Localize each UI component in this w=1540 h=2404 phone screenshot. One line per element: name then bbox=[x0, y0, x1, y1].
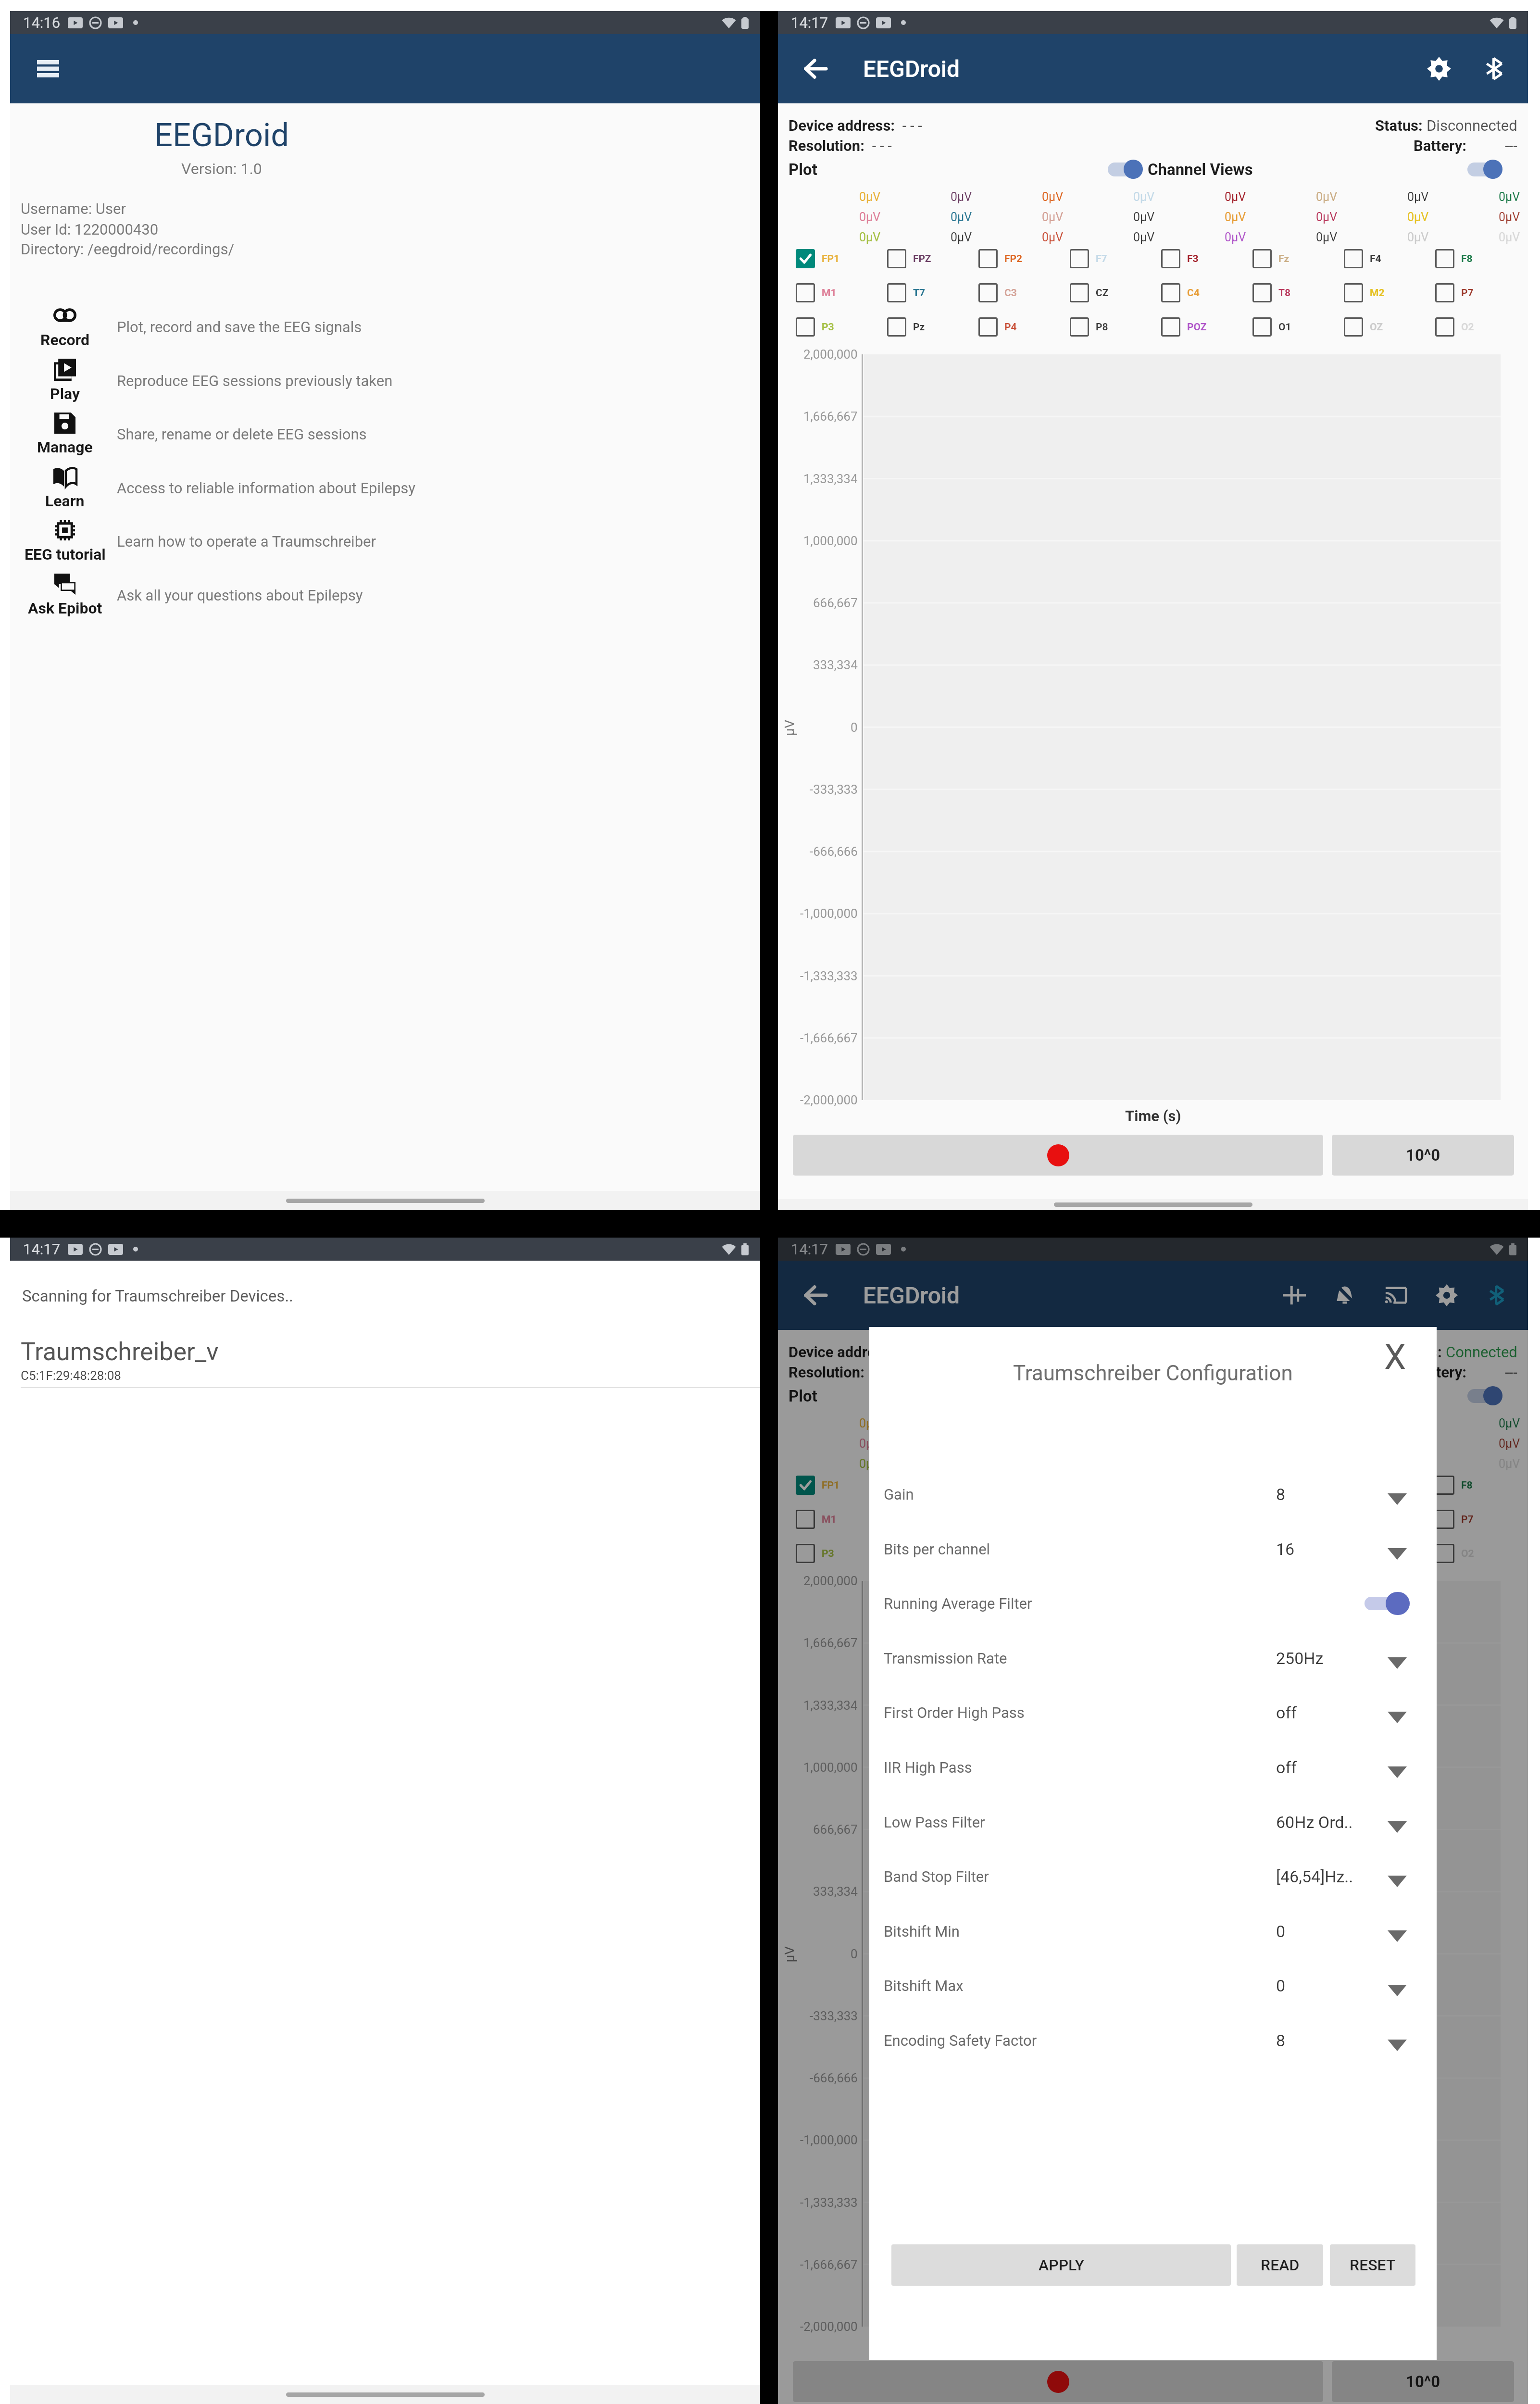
button[interactable] bbox=[1365, 1592, 1410, 1615]
button[interactable]: Bitshift Max bbox=[869, 1958, 1437, 2013]
button[interactable]: T8 bbox=[1252, 276, 1334, 310]
button[interactable] bbox=[793, 1135, 1323, 1176]
button[interactable]: POZ bbox=[1161, 310, 1243, 344]
button[interactable]: RESET bbox=[1330, 2244, 1415, 2286]
button[interactable]: O2 bbox=[1435, 310, 1517, 344]
staticText: off bbox=[1276, 1703, 1297, 1722]
button[interactable] bbox=[793, 2361, 1323, 2402]
button[interactable]: M2 bbox=[1344, 276, 1426, 310]
button[interactable] bbox=[1467, 159, 1502, 180]
button[interactable] bbox=[1467, 1385, 1502, 1406]
button[interactable]: P3 bbox=[796, 310, 877, 344]
button[interactable]: FP1 bbox=[796, 1468, 877, 1502]
button[interactable]: Bluetooth connected bbox=[1477, 1275, 1518, 1316]
button[interactable]: O1 bbox=[1252, 310, 1334, 344]
staticText: 333,334 bbox=[813, 658, 858, 672]
button[interactable]: P4 bbox=[978, 310, 1060, 344]
button[interactable]: Record bbox=[10, 297, 760, 351]
button[interactable]: P7 bbox=[1435, 1502, 1517, 1536]
button[interactable]: Bluetooth bbox=[1474, 48, 1515, 89]
button[interactable]: Running Average Filter bbox=[869, 1576, 1437, 1630]
button[interactable]: P3 bbox=[796, 1537, 877, 1570]
button[interactable]: Play bbox=[10, 351, 760, 404]
staticText: Reproduce EEG sessions previously taken bbox=[117, 372, 393, 389]
button[interactable]: F8 bbox=[1435, 242, 1517, 275]
button[interactable]: Ask Epibot bbox=[10, 565, 760, 619]
button[interactable]: Back bbox=[797, 50, 835, 88]
button[interactable]: Close bbox=[1373, 1335, 1417, 1379]
button[interactable]: OZ bbox=[1344, 1537, 1426, 1570]
button[interactable]: M1 bbox=[796, 276, 877, 310]
staticText: --- bbox=[1505, 1364, 1517, 1381]
button[interactable]: 10^0 bbox=[1332, 1135, 1514, 1176]
button[interactable]: Manage bbox=[10, 404, 760, 458]
staticText: M2 bbox=[1370, 287, 1385, 299]
button[interactable]: P7 bbox=[1435, 276, 1517, 310]
staticText: 0µV bbox=[1225, 230, 1246, 244]
button[interactable]: FPZ bbox=[887, 242, 969, 275]
button[interactable]: Bits per channel bbox=[869, 1522, 1437, 1576]
button[interactable]: CZ bbox=[1070, 276, 1152, 310]
button[interactable]: O2 bbox=[1435, 1537, 1517, 1570]
button[interactable]: APPLY bbox=[891, 2244, 1231, 2286]
button[interactable]: Add channel bbox=[1274, 1275, 1315, 1316]
button[interactable]: Gain bbox=[869, 1467, 1437, 1521]
button[interactable]: Settings bbox=[1426, 1275, 1467, 1316]
button[interactable]: C4 bbox=[1161, 276, 1243, 310]
button[interactable] bbox=[1108, 159, 1143, 180]
button[interactable]: Notifications off bbox=[1324, 1275, 1365, 1316]
staticText: Battery: bbox=[1414, 1364, 1470, 1381]
staticText: FP1 bbox=[822, 1479, 840, 1491]
staticText: T7 bbox=[913, 287, 926, 299]
button[interactable]: FPZ bbox=[887, 1468, 969, 1502]
button[interactable]: Cast bbox=[1375, 1275, 1416, 1316]
button[interactable]: Encoding Safety Factor bbox=[869, 2013, 1437, 2067]
button[interactable]: M2 bbox=[1344, 1502, 1426, 1536]
button[interactable]: F4 bbox=[1344, 242, 1426, 275]
button[interactable]: C3 bbox=[978, 276, 1060, 310]
button[interactable]: Pz bbox=[887, 310, 969, 344]
button[interactable]: Pz bbox=[887, 1537, 969, 1570]
button[interactable]: Fz bbox=[1252, 242, 1334, 275]
button[interactable]: P4 bbox=[978, 1537, 1060, 1570]
button[interactable]: Fz bbox=[1252, 1468, 1334, 1502]
button[interactable]: F8 bbox=[1435, 1468, 1517, 1502]
button[interactable]: READ bbox=[1237, 2244, 1323, 2286]
button[interactable]: IIR High Pass bbox=[869, 1740, 1437, 1794]
button[interactable]: 10^0 bbox=[1332, 2361, 1514, 2402]
button[interactable]: Menu bbox=[26, 47, 70, 90]
button[interactable]: P8 bbox=[1070, 310, 1152, 344]
staticText: 0µV bbox=[1133, 230, 1155, 244]
button[interactable]: FP2 bbox=[978, 242, 1060, 275]
button[interactable]: First Order High Pass bbox=[869, 1685, 1437, 1740]
button[interactable]: Traumschreiber_v bbox=[10, 1332, 760, 1387]
button[interactable]: M1 bbox=[796, 1502, 877, 1536]
button[interactable]: Settings bbox=[1418, 48, 1460, 89]
button[interactable]: T7 bbox=[887, 276, 969, 310]
staticText: C4 bbox=[1187, 287, 1200, 299]
button[interactable]: FP1 bbox=[796, 242, 877, 275]
button[interactable]: O1 bbox=[1252, 1537, 1334, 1570]
button[interactable]: F7 bbox=[1070, 242, 1152, 275]
button[interactable]: OZ bbox=[1344, 310, 1426, 344]
button[interactable]: EEG tutorial bbox=[10, 511, 760, 565]
button[interactable]: Band Stop Filter bbox=[869, 1849, 1437, 1903]
button[interactable]: F3 bbox=[1161, 242, 1243, 275]
button[interactable]: Low Pass Filter bbox=[869, 1795, 1437, 1849]
button[interactable]: Learn bbox=[10, 458, 760, 512]
button[interactable]: F4 bbox=[1344, 1468, 1426, 1502]
button[interactable]: Back bbox=[797, 1276, 835, 1315]
button[interactable]: Bitshift Min bbox=[869, 1904, 1437, 1958]
button[interactable]: Transmission Rate bbox=[869, 1631, 1437, 1685]
